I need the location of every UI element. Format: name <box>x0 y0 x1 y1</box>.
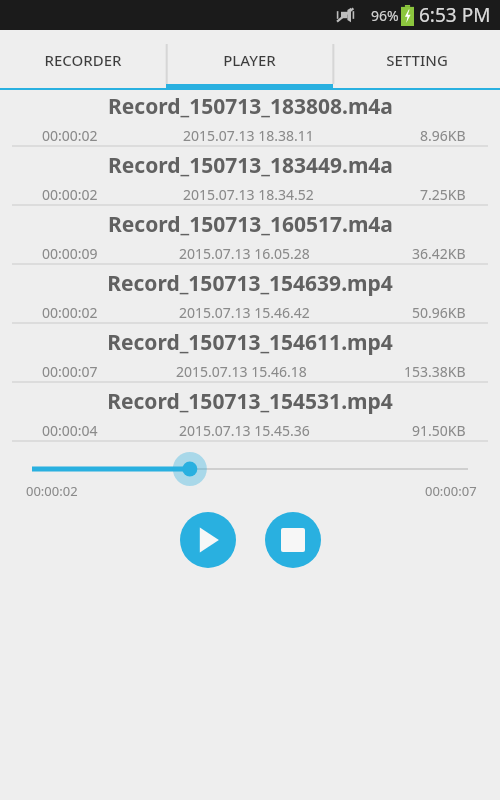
staticText: SETTING <box>386 50 448 70</box>
staticText: 2015.07.13 15.46.42 <box>179 303 310 322</box>
button[interactable]: SETTING <box>333 30 500 90</box>
staticText: Record_150713_154611.mp4 <box>107 328 393 357</box>
staticText: 2015.07.13 15.46.18 <box>176 362 307 381</box>
staticText: Record_150713_183449.m4a <box>108 151 393 180</box>
staticText: Record_150713_154639.mp4 <box>107 269 393 298</box>
staticText: PLAYER <box>223 50 276 70</box>
staticText: 00:00:09 <box>42 244 98 263</box>
staticText: 00:00:02 <box>26 482 78 500</box>
staticText: 00:00:04 <box>42 421 98 440</box>
staticText: 2015.07.13 18.38.11 <box>183 126 314 145</box>
button[interactable]: Record_150713_154531.mp4 <box>0 385 500 444</box>
staticText: Record_150713_183808.m4a <box>108 92 393 121</box>
staticText: 6:53 PM <box>419 2 491 28</box>
staticText: 50.96KB <box>412 303 466 322</box>
staticText: RECORDER <box>44 50 122 70</box>
button[interactable]: Play <box>180 512 236 568</box>
button[interactable]: Record_150713_154639.mp4 <box>0 267 500 326</box>
staticText: 96% <box>371 6 399 25</box>
staticText: 153.38KB <box>404 362 466 381</box>
button[interactable]: Record_150713_183808.m4a <box>0 90 500 149</box>
staticText: 8.96KB <box>420 126 466 145</box>
staticText: 2015.07.13 18.34.52 <box>183 185 314 204</box>
staticText: 2015.07.13 15.45.36 <box>179 421 310 440</box>
button[interactable]: RECORDER <box>0 30 166 90</box>
staticText: 00:00:02 <box>42 126 98 145</box>
staticText: 36.42KB <box>412 244 466 263</box>
staticText: Record_150713_160517.m4a <box>108 210 393 239</box>
staticText: 00:00:07 <box>42 362 98 381</box>
staticText: 00:00:07 <box>425 482 477 500</box>
staticText: 00:00:02 <box>42 303 98 322</box>
staticText: 91.50KB <box>412 421 466 440</box>
staticText: 2015.07.13 16.05.28 <box>179 244 310 263</box>
staticText: 7.25KB <box>420 185 466 204</box>
button[interactable]: PLAYER <box>166 30 333 90</box>
staticText: Record_150713_154531.mp4 <box>107 387 393 416</box>
button[interactable]: Record_150713_183449.m4a <box>0 149 500 208</box>
button[interactable]: Seek bar <box>0 456 500 482</box>
button[interactable]: Stop <box>265 512 321 568</box>
button[interactable]: Record_150713_160517.m4a <box>0 208 500 267</box>
staticText: 00:00:02 <box>42 185 98 204</box>
button[interactable]: Record_150713_154611.mp4 <box>0 326 500 385</box>
